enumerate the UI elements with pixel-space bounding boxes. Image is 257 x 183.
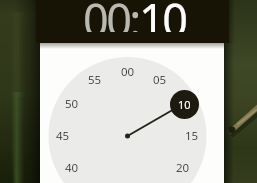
- button[interactable]: 50: [58, 95, 86, 113]
- staticText: 15: [185, 128, 199, 144]
- button[interactable]: 00:: [83, 0, 139, 32]
- button[interactable]: 55: [81, 71, 109, 89]
- staticText: 10: [139, 0, 186, 32]
- button[interactable]: 20: [169, 159, 197, 177]
- staticText: 40: [65, 160, 79, 176]
- staticText: 05: [153, 72, 167, 88]
- staticText: 55: [88, 72, 102, 88]
- staticText: 50: [65, 96, 79, 112]
- staticText: 00: [121, 64, 135, 80]
- button[interactable]: 00: [114, 63, 142, 81]
- staticText: 20: [176, 160, 190, 176]
- button[interactable]: 15: [178, 127, 206, 145]
- button[interactable]: 40: [58, 159, 86, 177]
- button[interactable]: 45: [49, 127, 77, 145]
- staticText: 45: [56, 128, 70, 144]
- staticText: 00:: [83, 0, 139, 32]
- button[interactable]: 10: [139, 0, 186, 32]
- staticText: 10: [178, 97, 191, 112]
- button[interactable]: 10: [170, 90, 199, 119]
- button[interactable]: 05: [146, 71, 174, 89]
